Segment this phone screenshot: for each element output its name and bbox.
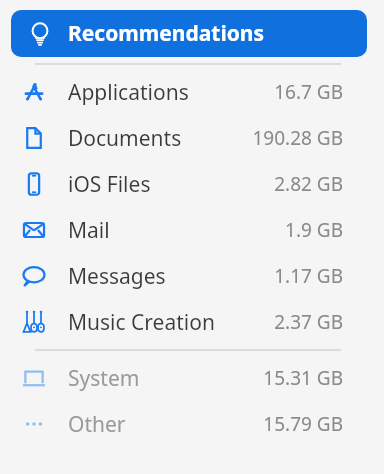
staticText: Recommendations: [68, 19, 264, 48]
staticText: 15.79 GB: [263, 411, 343, 437]
staticText: 1.9 GB: [285, 217, 343, 243]
button[interactable]: System: [0, 355, 384, 401]
staticText: 190.28 GB: [252, 125, 343, 151]
button[interactable]: Other: [0, 401, 384, 447]
staticText: Messages: [68, 262, 166, 291]
staticText: Applications: [68, 78, 189, 107]
button[interactable]: Mail: [0, 207, 384, 253]
staticText: iOS Files: [68, 170, 151, 199]
staticText: 16.7 GB: [274, 79, 343, 105]
staticText: 1.17 GB: [274, 263, 343, 289]
staticText: 15.31 GB: [263, 365, 343, 391]
staticText: Documents: [68, 124, 182, 153]
staticText: Other: [68, 410, 126, 439]
staticText: 2.82 GB: [274, 171, 343, 197]
staticText: System: [68, 364, 140, 393]
staticText: Music Creation: [68, 308, 215, 337]
button[interactable]: Applications: [0, 69, 384, 115]
staticText: Mail: [68, 216, 110, 245]
button[interactable]: iOS Files: [0, 161, 384, 207]
button[interactable]: Music Creation: [0, 299, 384, 345]
button[interactable]: Documents: [0, 115, 384, 161]
button[interactable]: Recommendations: [11, 10, 367, 57]
staticText: 2.37 GB: [274, 309, 343, 335]
button[interactable]: Messages: [0, 253, 384, 299]
